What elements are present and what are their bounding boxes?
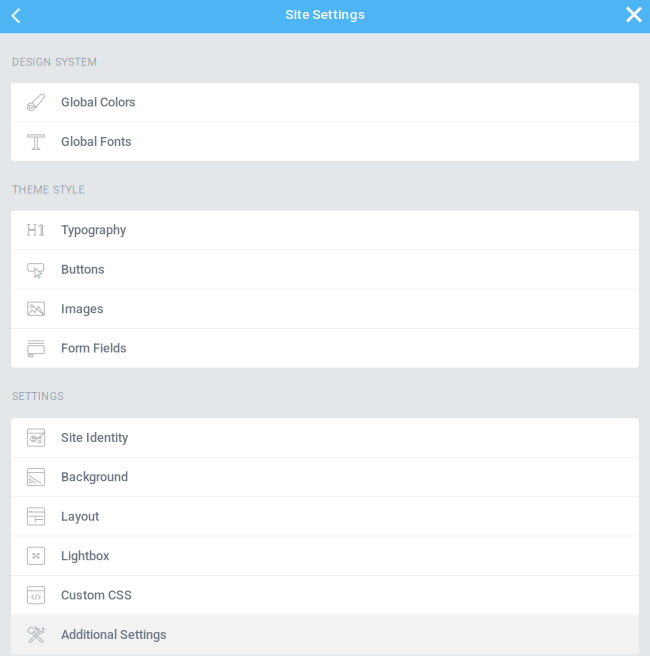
button[interactable]: Typography	[11, 211, 639, 249]
staticText: Custom CSS	[61, 588, 132, 603]
button[interactable]: Lightbox	[11, 537, 639, 575]
staticText: Buttons	[61, 262, 105, 277]
staticText: Images	[61, 301, 104, 316]
staticText: Global Fonts	[61, 134, 132, 149]
staticText: Layout	[61, 509, 99, 524]
staticText: Site Settings	[285, 6, 365, 22]
button[interactable]: Background	[11, 458, 639, 496]
button[interactable]: Back	[0, 0, 32, 33]
staticText: Lightbox	[61, 548, 109, 563]
button[interactable]: Additional Settings	[11, 615, 639, 654]
staticText: Typography	[61, 223, 126, 237]
staticText: SETTINGS	[12, 390, 63, 403]
button[interactable]: Form Fields	[11, 329, 639, 367]
button[interactable]: Site Identity	[11, 418, 639, 457]
button[interactable]: Close	[623, 0, 650, 33]
button[interactable]: Images	[11, 290, 639, 328]
staticText: DESIGN SYSTEM	[12, 56, 96, 68]
staticText: Background	[61, 470, 128, 484]
button[interactable]: Custom CSS	[11, 576, 639, 614]
staticText: Additional Settings	[61, 627, 167, 642]
staticText: Global Colors	[61, 95, 136, 110]
staticText: Site Identity	[61, 430, 128, 445]
button[interactable]: Global Colors	[11, 83, 639, 121]
staticText: Form Fields	[61, 341, 127, 356]
button[interactable]: Global Fonts	[11, 122, 639, 161]
staticText: THEME STYLE	[12, 183, 84, 196]
button[interactable]: Layout	[11, 497, 639, 536]
button[interactable]: Buttons	[11, 250, 639, 289]
